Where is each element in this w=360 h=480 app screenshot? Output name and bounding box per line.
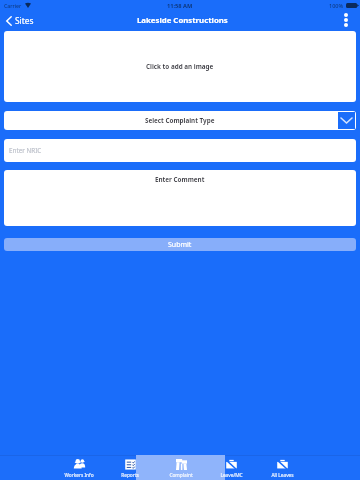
button[interactable]: Select Complaint Type <box>4 111 356 130</box>
button[interactable]: Enter Comment <box>4 170 356 226</box>
button[interactable]: Enter NRIC <box>4 139 356 162</box>
staticText: Carrier <box>4 2 22 9</box>
button[interactable]: Complaint <box>155 455 206 480</box>
staticText: Select Complaint Type <box>145 116 215 125</box>
button[interactable]: All Leaves <box>257 455 308 480</box>
staticText: 11:58 AM <box>167 2 193 10</box>
button[interactable]: Open complaint type dropdown <box>338 112 355 129</box>
staticText: Lakeside Constructions <box>137 15 228 26</box>
staticText: Workers Info <box>64 472 94 479</box>
staticText: Submit <box>168 240 192 250</box>
button[interactable]: Workers Info <box>53 455 104 480</box>
staticText: Enter NRIC <box>9 146 42 155</box>
button[interactable]: More options <box>344 13 348 27</box>
staticText: Click to add an image <box>146 62 214 71</box>
staticText: Reports <box>121 472 139 479</box>
staticText: Sites <box>15 15 34 26</box>
button[interactable]: Reports <box>104 455 155 480</box>
other: Back <box>6 16 12 26</box>
staticText: All Leaves <box>271 472 294 479</box>
staticText: Leave/MC <box>220 472 243 479</box>
staticText: Enter Comment <box>155 175 205 184</box>
button[interactable]: Click to add an image <box>4 31 356 102</box>
staticText: Complaint <box>169 472 193 479</box>
button[interactable]: Submit <box>4 238 356 251</box>
button[interactable]: Leave/MC <box>206 455 257 480</box>
button[interactable]: Back <box>6 15 34 26</box>
staticText: 100% <box>329 2 344 9</box>
